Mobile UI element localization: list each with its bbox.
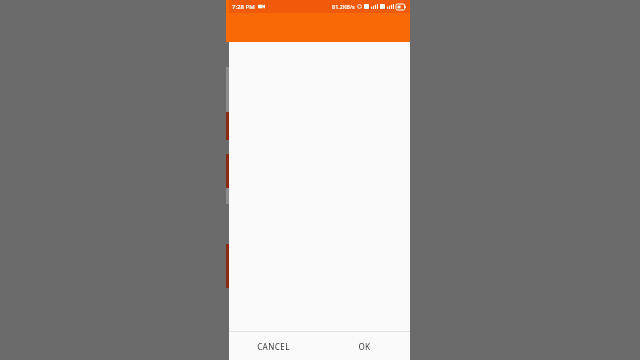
button[interactable]: CANCEL bbox=[228, 332, 319, 360]
staticText: 7:28 PM bbox=[232, 3, 255, 11]
staticText: CANCEL bbox=[257, 341, 290, 352]
staticText: 81.2KB/s bbox=[332, 3, 355, 10]
staticText: OK bbox=[358, 341, 371, 352]
button[interactable]: OK bbox=[319, 332, 410, 360]
